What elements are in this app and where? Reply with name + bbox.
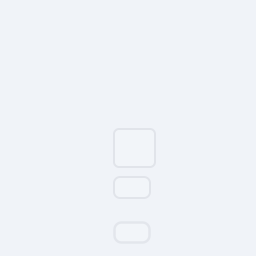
button[interactable] <box>114 222 149 242</box>
button[interactable] <box>114 129 155 167</box>
button[interactable] <box>114 177 150 198</box>
